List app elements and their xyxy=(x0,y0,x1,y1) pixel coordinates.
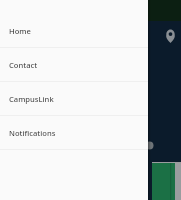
button[interactable]: Home xyxy=(0,14,148,47)
button[interactable]: Contact xyxy=(0,48,148,81)
button[interactable]: CampusLink xyxy=(0,82,148,115)
staticText: Contact xyxy=(9,60,38,70)
staticText: CampusLink xyxy=(9,94,54,104)
staticText: Home xyxy=(9,26,31,36)
staticText: Notifications xyxy=(9,128,56,138)
button[interactable]: Notifications xyxy=(0,116,148,149)
